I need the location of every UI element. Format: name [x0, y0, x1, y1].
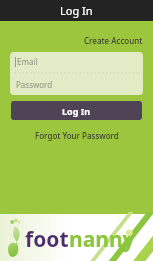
staticText: foot: [25, 225, 69, 254]
staticText: Log In: [60, 3, 93, 18]
button[interactable]: Log In: [11, 101, 142, 120]
staticText: Log In: [62, 105, 91, 117]
button[interactable]: Password: [10, 74, 143, 94]
staticText: Email: [17, 56, 38, 67]
staticText: Forgot Your Password: [35, 130, 119, 141]
other: Footnanny logo: [5, 218, 23, 258]
staticText: Password: [16, 79, 53, 90]
button[interactable]: Create Account: [82, 34, 145, 47]
button[interactable]: Forgot Your Password: [32, 129, 122, 142]
staticText: nanny: [69, 225, 135, 254]
button[interactable]: Email: [10, 52, 143, 71]
staticText: Create Account: [84, 35, 143, 46]
